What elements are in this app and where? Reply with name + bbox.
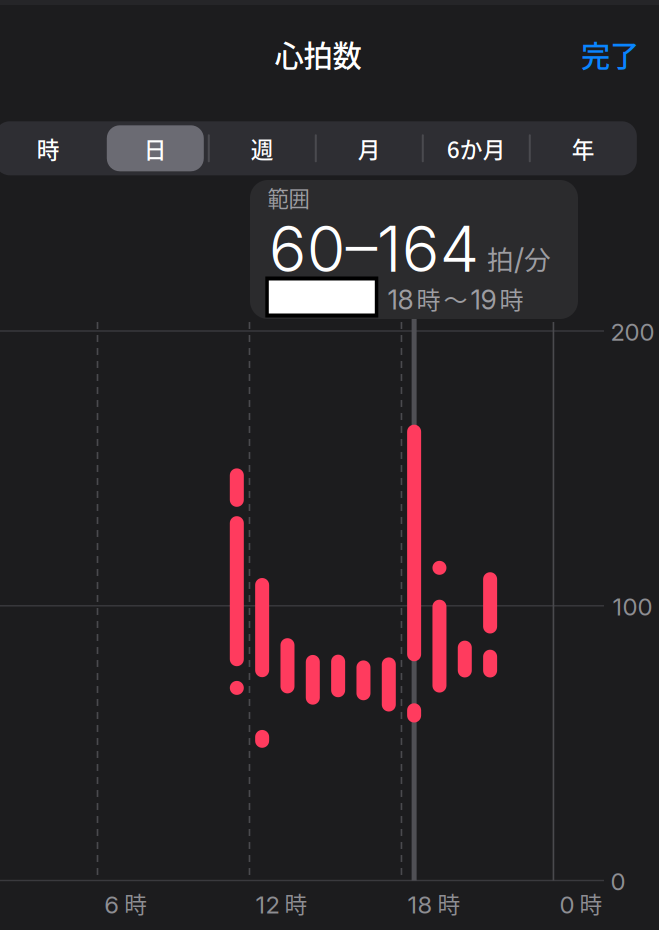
staticText: 範囲 <box>267 182 309 213</box>
staticText: 12 <box>256 890 280 919</box>
staticText: 19 <box>470 284 496 316</box>
staticText: 〜 <box>443 281 467 316</box>
button[interactable]: 時 <box>0 121 102 175</box>
button[interactable]: 週 <box>209 121 316 175</box>
staticText: 18 <box>408 890 433 919</box>
staticText: 日 <box>144 132 167 165</box>
staticText: 拍 <box>487 239 514 277</box>
button[interactable]: 月 <box>316 121 423 175</box>
staticText: 分 <box>524 239 551 277</box>
staticText: 年 <box>572 132 595 165</box>
staticText: 時 <box>124 887 147 919</box>
staticText: 200 <box>610 317 654 346</box>
staticText: / <box>514 242 524 277</box>
button[interactable]: 6か月 <box>423 121 530 175</box>
staticText: 0 <box>559 890 574 919</box>
staticText: 週 <box>251 132 274 165</box>
staticText: 6か月 <box>447 132 506 165</box>
staticText: 時 <box>438 887 461 919</box>
staticText: 60–164 <box>269 211 479 287</box>
button[interactable]: 完了 <box>569 23 651 85</box>
staticText: 心拍数 <box>274 33 361 75</box>
staticText: 完了 <box>581 33 639 75</box>
staticText: 18 <box>387 284 413 316</box>
staticText: 0 <box>610 867 625 896</box>
staticText: 100 <box>612 592 652 621</box>
button[interactable]: 年 <box>530 121 637 175</box>
staticText: 時 <box>416 281 440 316</box>
staticText: 時 <box>499 281 523 316</box>
staticText: 時 <box>579 887 602 919</box>
staticText: 時 <box>285 887 308 919</box>
staticText: 6 <box>104 890 119 919</box>
staticText: 月 <box>358 132 381 165</box>
staticText: 時 <box>37 132 60 165</box>
button[interactable]: 日 <box>102 121 209 175</box>
